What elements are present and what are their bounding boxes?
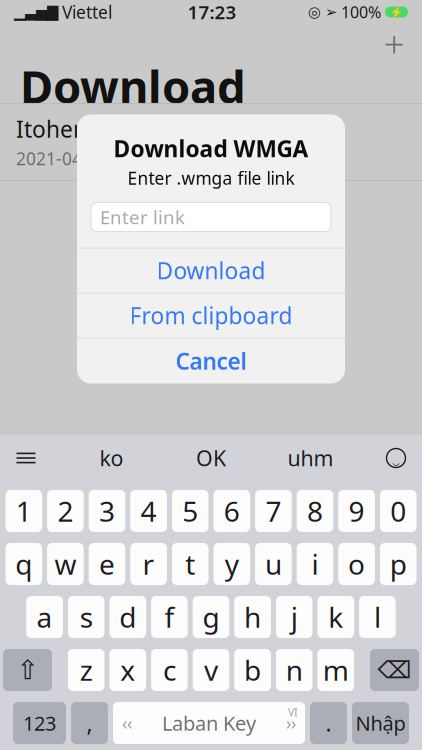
staticText: h bbox=[244, 598, 261, 636]
button[interactable]: Emoji bbox=[370, 438, 422, 478]
staticText: Itohen.wmga bbox=[16, 114, 159, 144]
button[interactable]: . bbox=[310, 702, 347, 744]
button[interactable]: r bbox=[130, 543, 167, 585]
button[interactable]: Itohen.wmga bbox=[0, 104, 422, 180]
button[interactable]: o bbox=[338, 543, 375, 585]
staticText: 5 bbox=[182, 492, 198, 530]
staticText: 2021-04-06 bbox=[16, 147, 108, 170]
staticText: ▁▃▅▇ bbox=[14, 4, 58, 20]
button[interactable]: d bbox=[109, 596, 146, 638]
button[interactable]: Download bbox=[77, 249, 345, 293]
staticText: 0 bbox=[390, 492, 406, 530]
staticText: g bbox=[202, 598, 219, 636]
button[interactable]: e bbox=[89, 543, 125, 585]
staticText: a bbox=[37, 598, 53, 636]
button[interactable]: 2 bbox=[47, 490, 84, 532]
staticText: Enter link bbox=[100, 205, 185, 229]
button[interactable]: 4 bbox=[130, 490, 167, 532]
button[interactable]: n bbox=[276, 649, 312, 691]
staticText: Nhập bbox=[355, 710, 405, 736]
button[interactable]: Nhập bbox=[352, 702, 409, 744]
button[interactable]: j bbox=[276, 596, 312, 638]
button[interactable]: k bbox=[317, 596, 354, 638]
staticText: b bbox=[244, 651, 261, 689]
button[interactable]: 6 bbox=[213, 490, 250, 532]
button[interactable]: OK bbox=[171, 438, 251, 478]
button[interactable]: Add download bbox=[372, 24, 416, 62]
staticText: ›› bbox=[286, 711, 296, 734]
staticText: x bbox=[120, 651, 135, 689]
staticText: n bbox=[286, 651, 303, 689]
staticText: j bbox=[291, 598, 298, 636]
button[interactable]: Delete bbox=[370, 649, 419, 691]
staticText: . bbox=[325, 708, 331, 738]
staticText: f bbox=[164, 598, 174, 636]
button[interactable]: m bbox=[317, 649, 354, 691]
button[interactable]: x bbox=[109, 649, 146, 691]
staticText: c bbox=[163, 651, 176, 689]
staticText: 17:23 bbox=[187, 0, 236, 24]
staticText: z bbox=[80, 651, 93, 689]
button[interactable]: From clipboard bbox=[77, 294, 345, 338]
staticText: 6 bbox=[224, 492, 240, 530]
button[interactable]: 0 bbox=[380, 490, 416, 532]
button[interactable]: f bbox=[151, 596, 188, 638]
button[interactable]: i bbox=[297, 543, 333, 585]
button[interactable]: h bbox=[234, 596, 271, 638]
staticText: 8 bbox=[307, 492, 323, 530]
button[interactable]: t bbox=[172, 543, 208, 585]
button[interactable]: a bbox=[26, 596, 63, 638]
button[interactable]: uhm bbox=[270, 438, 350, 478]
staticText: ko bbox=[99, 444, 123, 472]
staticText: Laban Key bbox=[162, 710, 256, 736]
button[interactable]: 1 bbox=[5, 490, 42, 532]
staticText: Download bbox=[20, 56, 246, 116]
staticText: OK bbox=[196, 444, 226, 472]
staticText: ⇧ bbox=[16, 655, 38, 685]
staticText: ➢ bbox=[325, 4, 337, 20]
staticText: d bbox=[119, 598, 136, 636]
staticText: r bbox=[143, 545, 155, 583]
staticText: 123 bbox=[23, 710, 56, 736]
button[interactable]: 5 bbox=[172, 490, 208, 532]
button[interactable]: 9 bbox=[338, 490, 375, 532]
staticText: i bbox=[311, 545, 318, 583]
staticText: m bbox=[323, 651, 349, 689]
button[interactable]: s bbox=[68, 596, 104, 638]
button[interactable]: 3 bbox=[89, 490, 125, 532]
button[interactable]: q bbox=[5, 543, 42, 585]
staticText: ‿ bbox=[392, 450, 399, 466]
button[interactable]: y bbox=[213, 543, 250, 585]
button[interactable]: ko bbox=[71, 438, 151, 478]
button[interactable]: u bbox=[255, 543, 292, 585]
button[interactable]: Space bbox=[113, 702, 305, 744]
staticText: w bbox=[54, 545, 76, 583]
staticText: VI bbox=[288, 705, 298, 719]
button[interactable]: v bbox=[193, 649, 229, 691]
button[interactable]: l bbox=[359, 596, 396, 638]
staticText: Cancel bbox=[175, 346, 246, 376]
staticText: 4 bbox=[141, 492, 157, 530]
button[interactable]: b bbox=[234, 649, 271, 691]
staticText: e bbox=[99, 545, 115, 583]
button[interactable]: Cancel bbox=[77, 339, 345, 384]
button[interactable]: Keyboard options bbox=[0, 438, 52, 478]
button[interactable]: Shift bbox=[3, 649, 52, 691]
staticText: ⚡ bbox=[390, 6, 403, 18]
button[interactable]: w bbox=[47, 543, 84, 585]
staticText: 100% bbox=[341, 1, 381, 23]
staticText: s bbox=[80, 598, 93, 636]
button[interactable]: c bbox=[151, 649, 188, 691]
staticText: Enter .wmga file link bbox=[127, 166, 294, 189]
staticText: 2 bbox=[57, 492, 73, 530]
button[interactable]: 123 bbox=[13, 702, 66, 744]
staticText: , bbox=[86, 708, 92, 738]
button[interactable]: g bbox=[193, 596, 229, 638]
button[interactable]: 8 bbox=[297, 490, 333, 532]
button[interactable]: 7 bbox=[255, 490, 292, 532]
staticText: p bbox=[390, 545, 407, 583]
staticText: 7 bbox=[265, 492, 281, 530]
button[interactable]: p bbox=[380, 543, 416, 585]
button[interactable]: , bbox=[71, 702, 108, 744]
button[interactable]: z bbox=[68, 649, 104, 691]
